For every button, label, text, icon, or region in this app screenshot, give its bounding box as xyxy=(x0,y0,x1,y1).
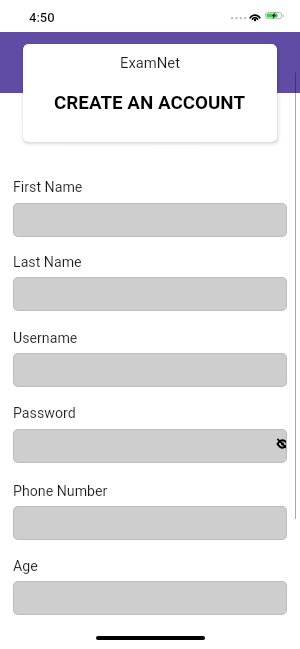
staticText: Username xyxy=(13,330,78,347)
button[interactable] xyxy=(13,353,287,387)
button[interactable] xyxy=(13,581,287,615)
staticText: CREATE AN ACCOUNT xyxy=(54,92,246,114)
staticText: Last Name xyxy=(13,254,82,271)
button[interactable] xyxy=(13,277,287,311)
button[interactable]: Toggle password visibility xyxy=(13,429,287,463)
staticText: Phone Number xyxy=(13,483,108,500)
button[interactable]: Toggle password visibility xyxy=(271,433,287,455)
staticText: Age xyxy=(13,558,38,575)
staticText: Password xyxy=(13,405,76,422)
staticText: First Name xyxy=(13,179,83,196)
button[interactable] xyxy=(13,203,287,237)
staticText: 4:50 xyxy=(29,10,55,25)
button[interactable] xyxy=(13,506,287,540)
staticText: ExamNet xyxy=(120,54,181,71)
